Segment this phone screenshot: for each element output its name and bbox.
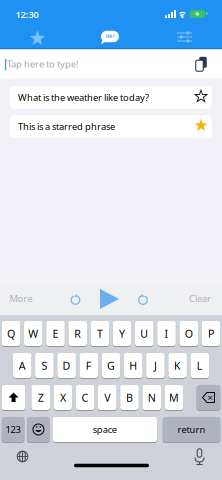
- staticText: H: [129, 358, 137, 373]
- button[interactable]: F: [79, 352, 98, 378]
- button[interactable]: T: [91, 320, 109, 346]
- button[interactable]: space: [53, 416, 157, 442]
- staticText: This is a starred phrase: [18, 120, 115, 133]
- button[interactable]: B: [120, 384, 139, 410]
- button[interactable]: [194, 90, 207, 103]
- staticText: 12:30: [15, 8, 38, 21]
- button[interactable]: [194, 119, 207, 132]
- staticText: X: [60, 390, 66, 405]
- staticText: Z: [38, 390, 44, 405]
- button[interactable]: [26, 28, 48, 48]
- staticText: B: [126, 390, 133, 405]
- staticText: What is the weather like today?: [18, 91, 149, 104]
- button[interactable]: R: [68, 320, 87, 346]
- staticText: N: [148, 390, 156, 405]
- button[interactable]: G: [102, 352, 120, 378]
- button[interactable]: Z: [31, 384, 50, 410]
- button[interactable]: I: [157, 320, 176, 346]
- staticText: Y: [119, 326, 125, 341]
- button[interactable]: P: [202, 320, 220, 346]
- staticText: S: [41, 358, 47, 373]
- button[interactable]: K: [168, 352, 187, 378]
- staticText: U: [140, 326, 148, 341]
- button[interactable]: [177, 31, 192, 43]
- button[interactable]: H: [124, 352, 142, 378]
- button[interactable]: U: [135, 320, 154, 346]
- staticText: ×: [207, 391, 212, 404]
- staticText: F: [86, 358, 92, 373]
- staticText: space: [93, 423, 117, 436]
- staticText: Q: [7, 326, 15, 341]
- button[interactable]: M: [165, 384, 183, 410]
- button[interactable]: What is the weather like today?: [10, 86, 212, 109]
- staticText: 123: [6, 423, 21, 436]
- staticText: Clear: [189, 292, 211, 305]
- staticText: L: [197, 358, 203, 373]
- button[interactable]: W: [24, 320, 43, 346]
- button[interactable]: Q: [2, 320, 20, 346]
- staticText: Tap here to type!: [7, 58, 79, 70]
- staticText: J: [154, 358, 157, 373]
- staticText: G: [107, 358, 115, 373]
- button[interactable]: [2, 384, 25, 410]
- staticText: V: [104, 390, 110, 405]
- button[interactable]: This is a starred phrase: [10, 115, 212, 138]
- button[interactable]: [194, 56, 207, 72]
- button[interactable]: J: [146, 352, 165, 378]
- button[interactable]: O: [179, 320, 198, 346]
- staticText: O: [185, 326, 193, 341]
- staticText: P: [208, 326, 214, 341]
- button[interactable]: Clear: [185, 291, 215, 305]
- staticText: T: [97, 326, 103, 341]
- staticText: More: [9, 292, 32, 305]
- button[interactable]: A: [13, 352, 31, 378]
- button[interactable]: 123: [2, 416, 24, 442]
- button[interactable]: Y: [113, 320, 131, 346]
- button[interactable]: [100, 289, 119, 309]
- staticText: E: [52, 326, 58, 341]
- button[interactable]: S: [35, 352, 54, 378]
- staticText: K: [174, 358, 181, 373]
- staticText: W: [28, 326, 38, 341]
- staticText: R: [74, 326, 81, 341]
- staticText: return: [177, 423, 205, 436]
- button[interactable]: D: [57, 352, 76, 378]
- button[interactable]: N: [142, 384, 161, 410]
- staticText: D: [63, 358, 71, 373]
- button[interactable]: Tap here to type!: [0, 49, 222, 78]
- button[interactable]: X: [54, 384, 72, 410]
- button[interactable]: V: [98, 384, 117, 410]
- button[interactable]: [137, 294, 149, 306]
- button[interactable]: More: [6, 291, 36, 305]
- button[interactable]: C: [76, 384, 94, 410]
- button[interactable]: E: [46, 320, 65, 346]
- staticText: M: [169, 390, 179, 405]
- button[interactable]: [27, 416, 50, 442]
- button[interactable]: TEXT: [99, 28, 121, 44]
- staticText: TEXT: [105, 34, 114, 39]
- staticText: I: [164, 326, 168, 341]
- staticText: A: [19, 358, 26, 373]
- button[interactable]: [69, 294, 81, 306]
- button[interactable]: ×: [197, 384, 220, 410]
- button[interactable]: [193, 447, 206, 464]
- staticText: C: [82, 390, 89, 405]
- button[interactable]: L: [190, 352, 209, 378]
- button[interactable]: return: [163, 416, 220, 442]
- button[interactable]: [15, 449, 29, 463]
